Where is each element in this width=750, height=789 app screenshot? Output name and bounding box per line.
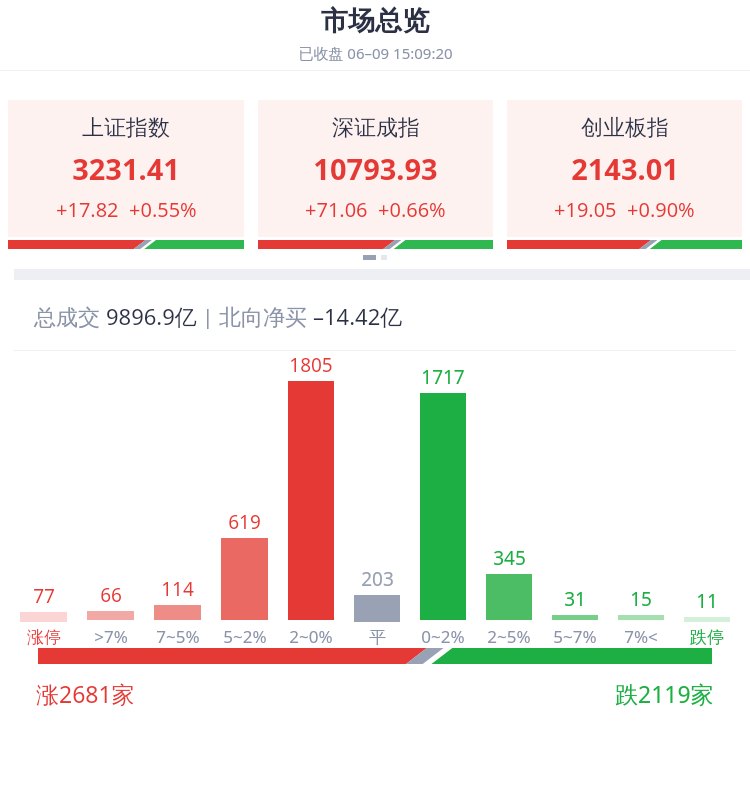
staticText: 上证指数 <box>82 114 170 142</box>
staticText: 15 <box>630 586 652 612</box>
staticText: 66 <box>100 582 122 608</box>
button[interactable]: 1805 <box>288 351 334 648</box>
staticText: 涨2681家 <box>36 678 135 709</box>
button[interactable]: 上证指数 <box>8 100 244 249</box>
staticText: 平 <box>369 627 386 648</box>
staticText: | <box>197 303 219 330</box>
button[interactable]: 77 <box>20 351 67 648</box>
staticText: >7% <box>94 625 128 648</box>
staticText: 跌2119家 <box>615 678 714 709</box>
staticText: 跌停 <box>690 627 724 648</box>
button[interactable]: 深证成指 <box>258 100 493 249</box>
staticText: 2~5% <box>487 625 531 648</box>
staticText: 114 <box>161 576 194 602</box>
button[interactable]: 31 <box>552 351 598 648</box>
staticText: 北向净买 <box>219 301 313 331</box>
staticText: 9896.9亿 <box>106 301 197 331</box>
staticText: +0.55% <box>129 196 197 223</box>
staticText: +0.66% <box>378 196 446 223</box>
staticText: 深证成指 <box>332 114 420 142</box>
staticText: 619 <box>228 509 261 535</box>
staticText: 345 <box>493 545 526 571</box>
staticText: 7~5% <box>156 625 200 648</box>
staticText: 3231.41 <box>72 149 180 188</box>
staticText: 203 <box>361 566 394 592</box>
staticText: 7%< <box>624 625 658 648</box>
staticText: 1717 <box>421 364 465 390</box>
staticText: 10793.93 <box>313 149 438 188</box>
button[interactable]: 66 <box>87 351 134 648</box>
button[interactable]: 总成交 <box>34 301 403 331</box>
staticText: 2143.01 <box>571 149 679 188</box>
staticText: 77 <box>33 583 55 609</box>
staticText: 5~7% <box>553 625 597 648</box>
staticText: 总成交 <box>34 301 106 331</box>
button[interactable]: 345 <box>486 351 532 648</box>
button[interactable]: 创业板指 <box>507 100 742 249</box>
button[interactable]: 1717 <box>420 351 466 648</box>
staticText: –14.42亿 <box>313 301 403 331</box>
staticText: 0~2% <box>421 625 465 648</box>
button[interactable]: 114 <box>154 351 201 648</box>
staticText: 已收盘 06–09 15:09:20 <box>298 43 453 63</box>
staticText: 2~0% <box>289 625 333 648</box>
button[interactable]: 619 <box>221 351 268 648</box>
staticText: 创业板指 <box>581 114 669 142</box>
staticText: 1805 <box>289 352 333 378</box>
staticText: 市场总览 <box>321 4 429 38</box>
staticText: +71.06 <box>305 196 368 223</box>
staticText: 11 <box>696 588 718 614</box>
staticText: +19.05 <box>554 196 617 223</box>
staticText: +0.90% <box>627 196 695 223</box>
staticText: +17.82 <box>56 196 119 223</box>
staticText: 5~2% <box>223 625 267 648</box>
button[interactable]: 15 <box>618 351 664 648</box>
button[interactable]: 203 <box>354 351 400 648</box>
staticText: 31 <box>564 586 586 612</box>
button[interactable]: 11 <box>684 351 730 648</box>
staticText: 涨停 <box>27 627 61 648</box>
